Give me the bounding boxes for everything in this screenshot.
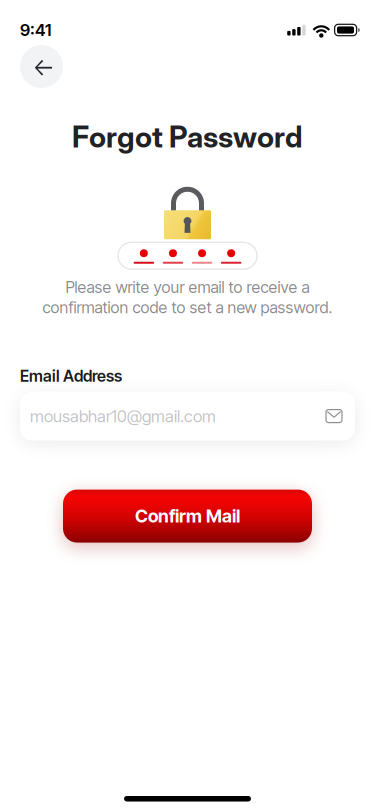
staticText: 9:41 xyxy=(20,20,51,40)
button[interactable]: Confirm Mail xyxy=(63,490,312,543)
staticText: Forgot Password xyxy=(72,119,303,154)
staticText: Confirm Mail xyxy=(135,505,240,527)
staticText: confirmation code to set a new password. xyxy=(42,298,332,317)
staticText: mousabhar10@gmail.com xyxy=(30,406,216,426)
staticText: Please write your email to receive a xyxy=(65,277,309,297)
staticText: Email Address xyxy=(20,366,122,386)
button[interactable]: Back xyxy=(20,45,63,88)
